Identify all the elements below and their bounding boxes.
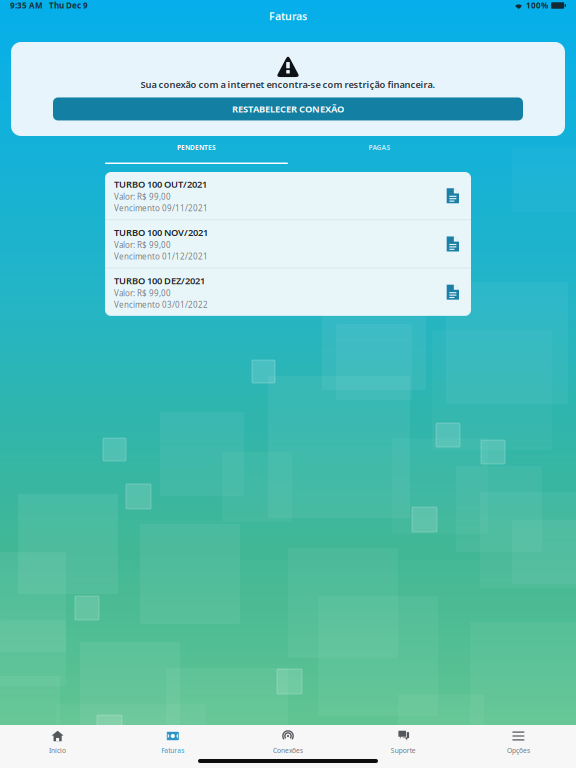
staticText: Valor: R$ 99,00 (114, 191, 171, 202)
button[interactable]: Opções (461, 725, 576, 759)
staticText: Valor: R$ 99,00 (114, 239, 171, 250)
button[interactable]: Conexões (230, 725, 346, 759)
button[interactable]: TURBO 100 DEZ/2021 (105, 268, 471, 316)
button[interactable]: PAGAS (288, 136, 471, 164)
staticText: Thu Dec 9 (49, 0, 88, 11)
button[interactable]: Suporte (346, 725, 461, 759)
staticText: Vencimento 09/11/2021 (114, 203, 208, 213)
staticText: Vencimento 03/01/2022 (114, 299, 208, 310)
staticText: TURBO 100 DEZ/2021 (114, 274, 205, 287)
staticText: Opções (507, 746, 530, 755)
button[interactable]: RESTABELECER CONEXÃO (53, 97, 523, 120)
staticText: Vencimento 01/12/2021 (114, 251, 208, 262)
staticText: 9:35 AM (10, 0, 43, 11)
staticText: RESTABELECER CONEXÃO (232, 103, 344, 115)
button[interactable]: TURBO 100 NOV/2021 (105, 220, 471, 268)
staticText: Faturas (269, 9, 307, 23)
staticText: TURBO 100 NOV/2021 (114, 226, 208, 238)
staticText: 100% (526, 0, 548, 11)
staticText: Suporte (391, 746, 416, 755)
button[interactable]: TURBO 100 OUT/2021 (105, 172, 471, 219)
button[interactable]: Início (0, 725, 115, 759)
button[interactable]: PENDENTES (105, 136, 288, 164)
staticText: Início (49, 746, 66, 755)
staticText: Conexões (273, 746, 303, 755)
button[interactable]: Faturas (115, 725, 230, 759)
staticText: PENDENTES (177, 143, 216, 152)
staticText: Sua conexão com a internet encontra-se c… (140, 78, 435, 90)
staticText: Faturas (161, 746, 184, 755)
staticText: PAGAS (368, 143, 390, 152)
staticText: Valor: R$ 99,00 (114, 288, 171, 298)
staticText: TURBO 100 OUT/2021 (114, 178, 207, 190)
